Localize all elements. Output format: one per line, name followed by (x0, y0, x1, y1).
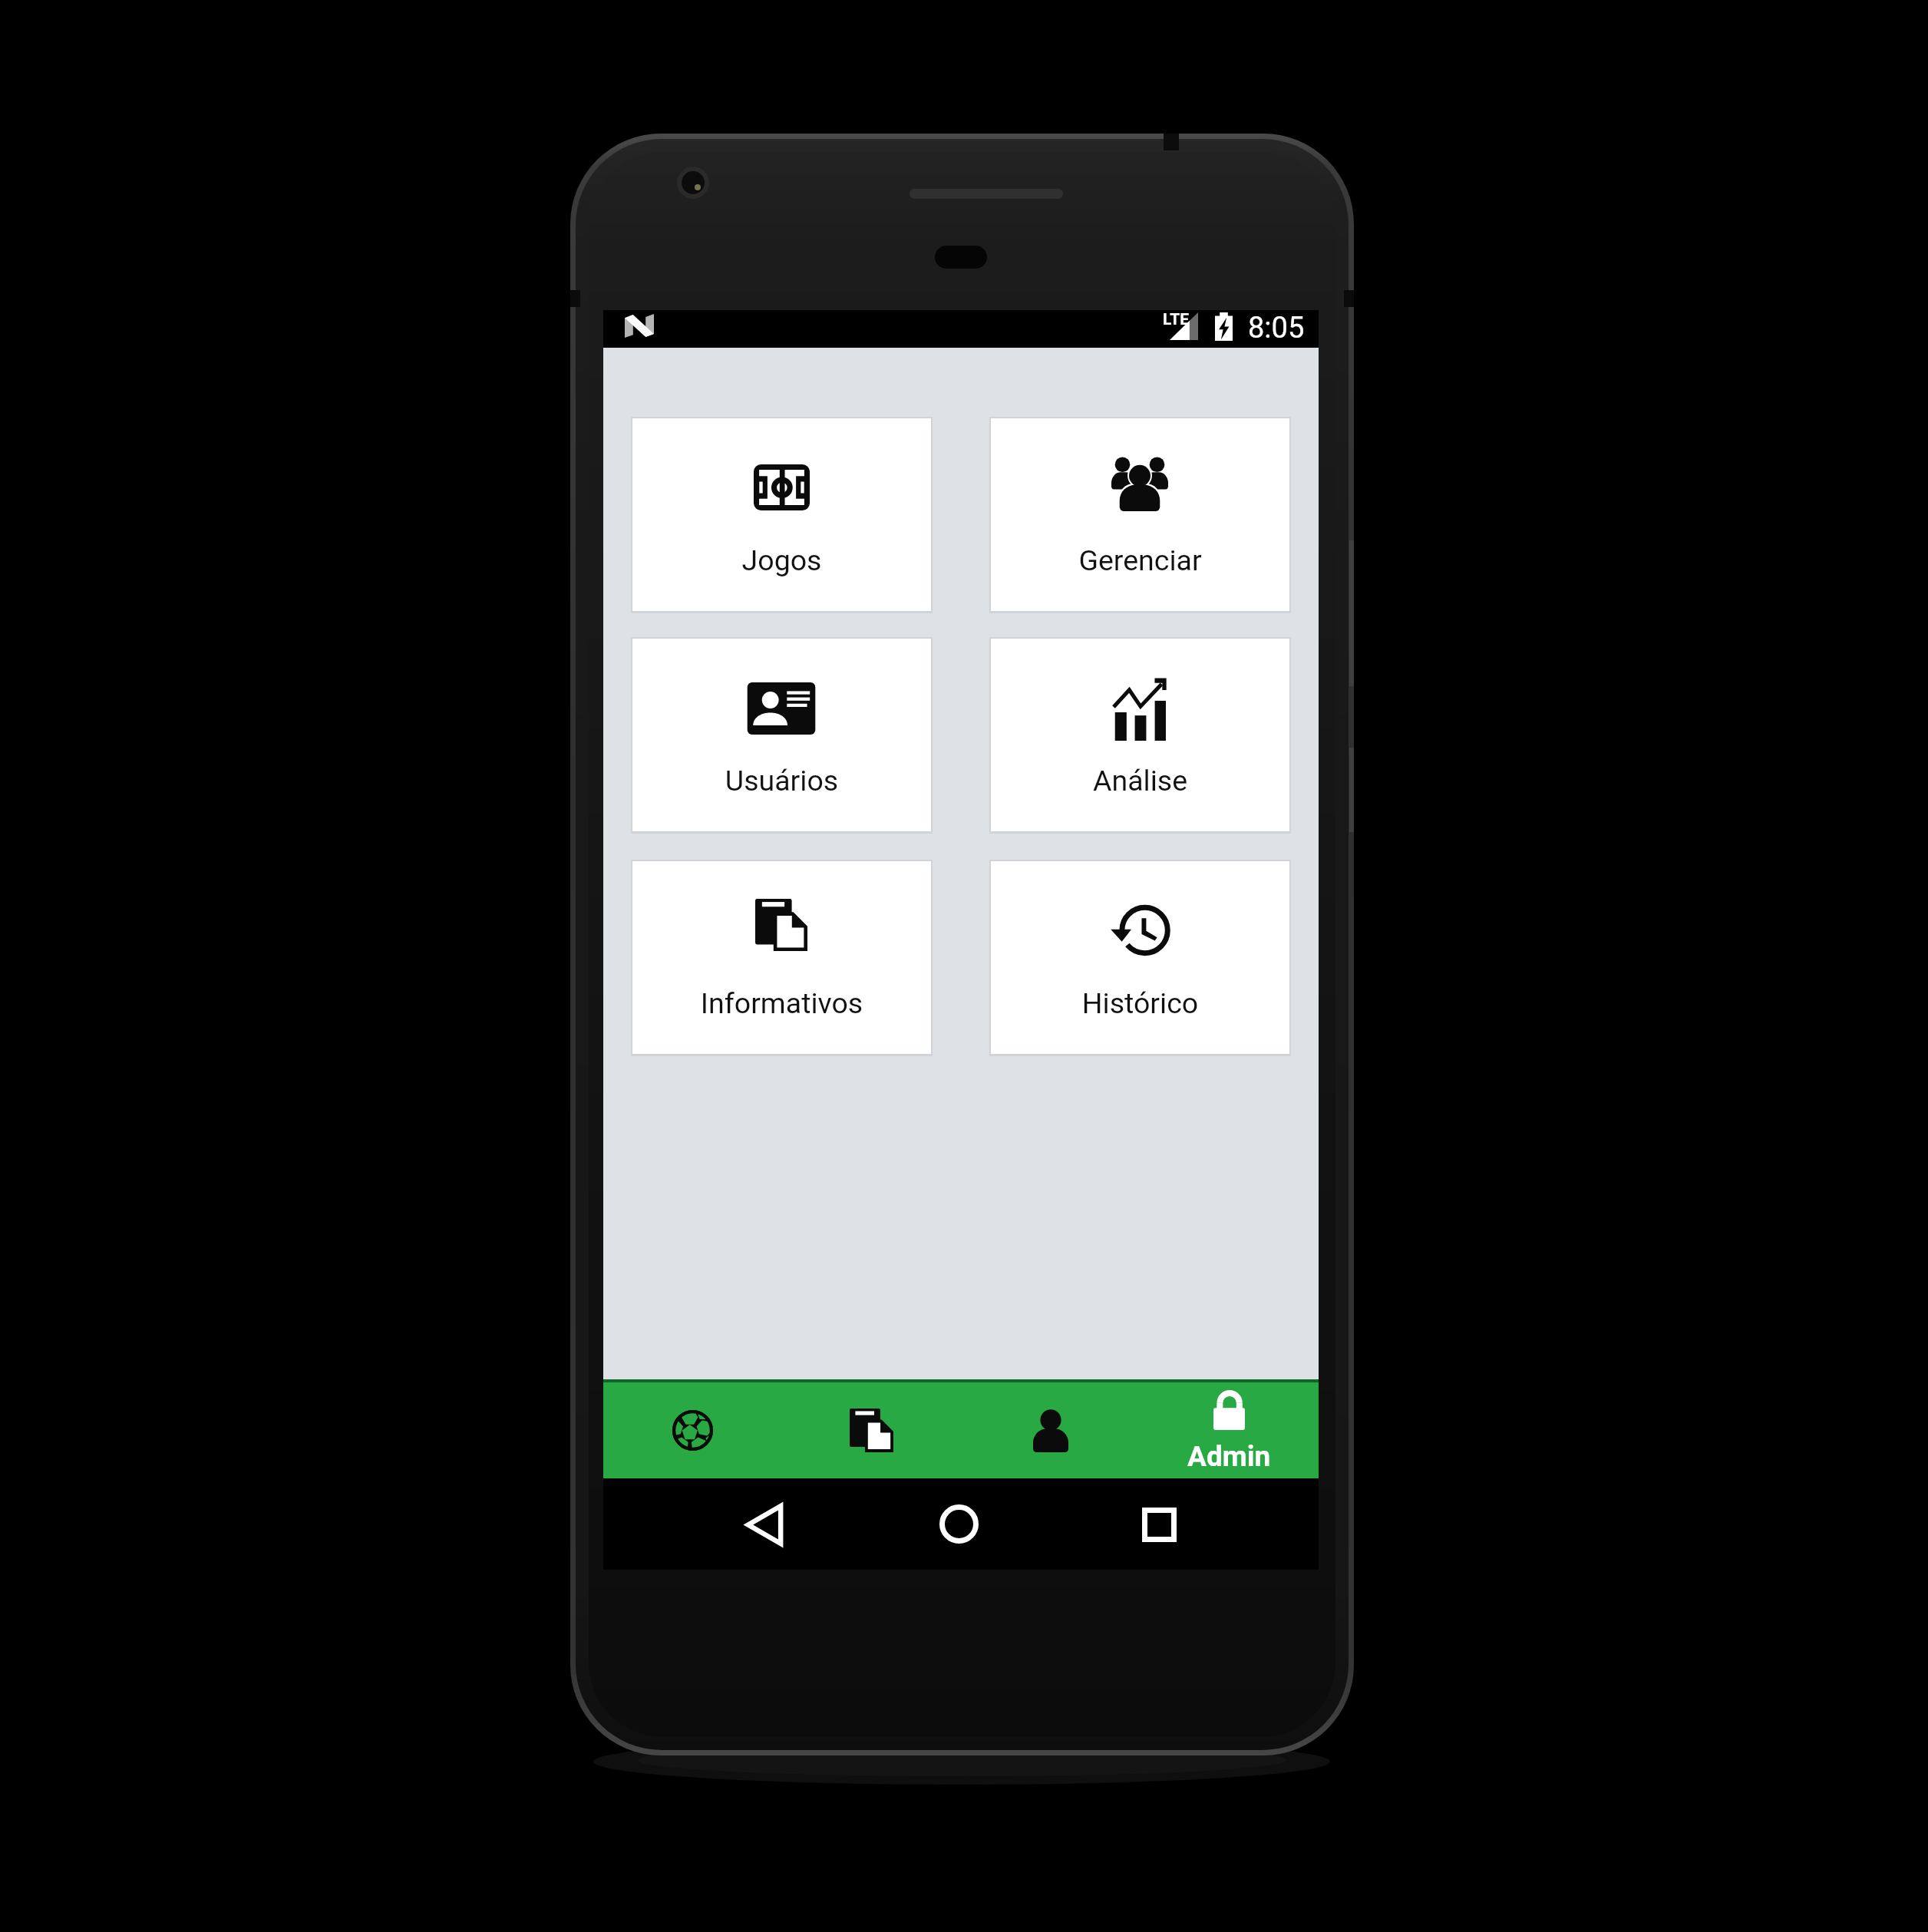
staticText: LTE (1163, 310, 1190, 329)
staticText: Informativos (632, 986, 931, 1020)
staticText: 8:05 (1248, 311, 1305, 345)
staticText: Análise (991, 764, 1289, 798)
button[interactable]: Recents (1117, 1482, 1201, 1567)
button[interactable]: Perfil (961, 1379, 1140, 1478)
button[interactable]: Informativos (782, 1379, 961, 1478)
button[interactable]: Histórico (991, 861, 1289, 1054)
button[interactable]: Usuários (632, 639, 931, 831)
button[interactable]: Back (722, 1482, 807, 1567)
button[interactable]: Análise (991, 639, 1289, 831)
staticText: Usuários (632, 764, 931, 798)
staticText: Admin (1187, 1440, 1271, 1473)
button[interactable]: Informativos (632, 861, 931, 1054)
button[interactable]: Jogos (632, 418, 931, 611)
staticText: Jogos (632, 543, 931, 577)
button[interactable]: Jogos (603, 1379, 782, 1478)
button[interactable]: Gerenciar (991, 418, 1289, 611)
button[interactable]: Home (916, 1481, 1001, 1566)
staticText: Gerenciar (991, 543, 1289, 577)
staticText: Histórico (991, 986, 1289, 1020)
button[interactable]: Admin (1140, 1379, 1319, 1478)
